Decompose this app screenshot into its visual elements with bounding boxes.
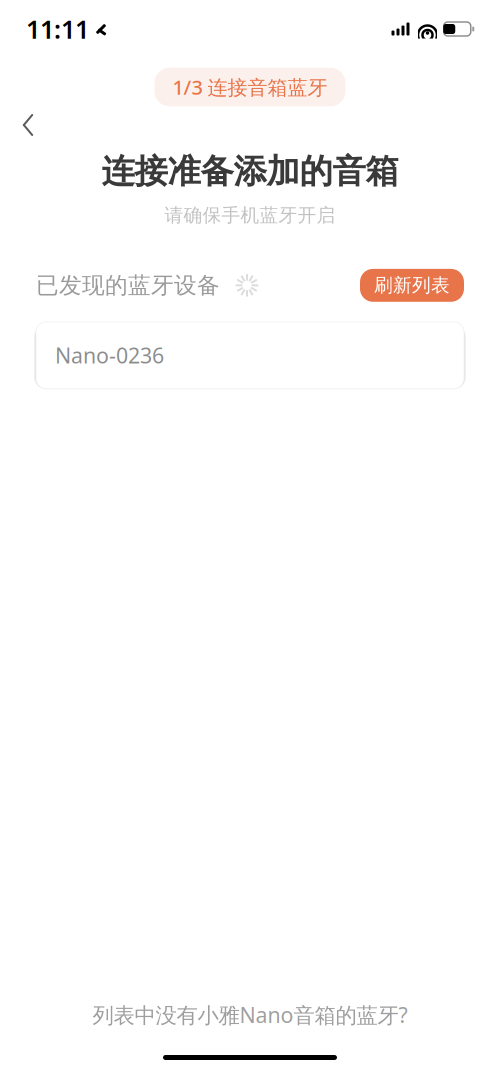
- staticText: 1/3 连接音箱蓝牙: [172, 74, 327, 100]
- staticText: 请确保手机蓝牙开启: [164, 204, 335, 227]
- staticText: 连接准备添加的音箱: [101, 151, 398, 192]
- staticText: 11:11: [26, 12, 89, 46]
- staticText: Nano-0236: [55, 341, 164, 369]
- button[interactable]: 列表中没有小雅Nano音箱的蓝牙?: [72, 993, 427, 1037]
- staticText: 刷新列表: [374, 274, 450, 297]
- button[interactable]: Back: [6, 105, 50, 145]
- button[interactable]: 刷新列表: [360, 269, 464, 302]
- button[interactable]: Nano-0236: [36, 322, 464, 389]
- staticText: 列表中没有小雅Nano音箱的蓝牙?: [92, 1001, 407, 1029]
- staticText: 已发现的蓝牙设备: [36, 271, 220, 299]
